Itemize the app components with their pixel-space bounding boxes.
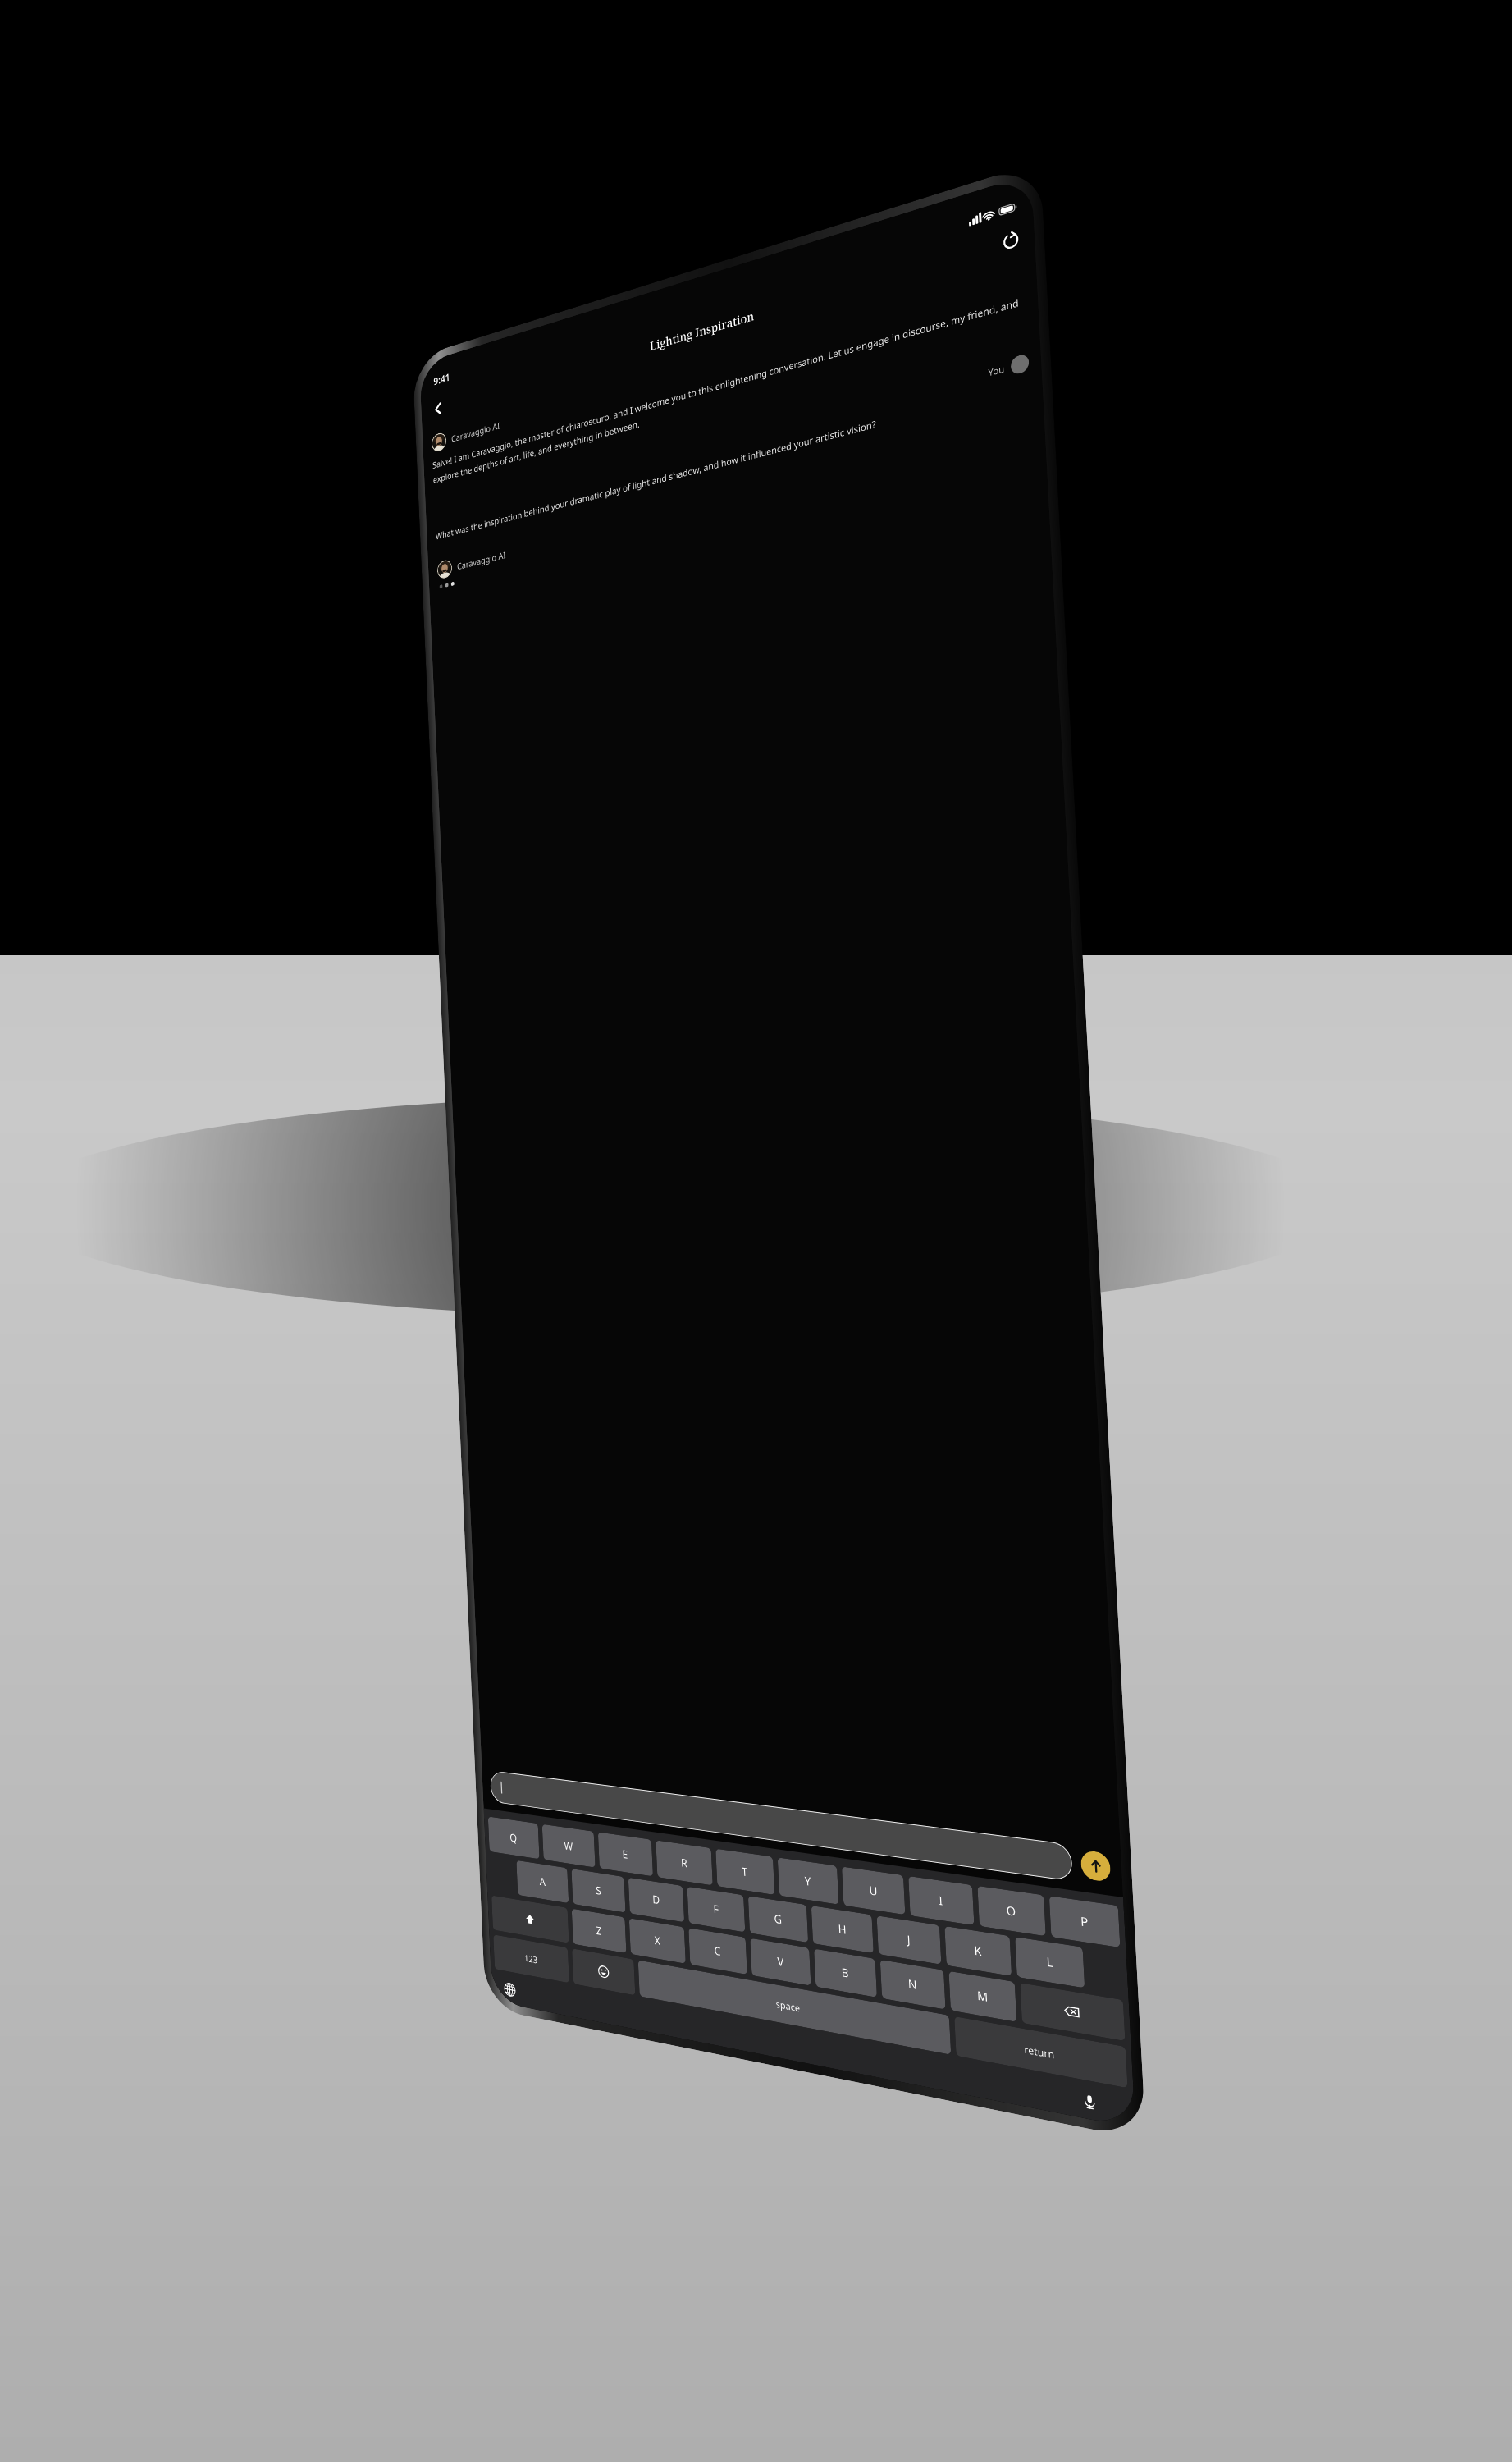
staticText: T bbox=[741, 1864, 748, 1880]
staticText: Y bbox=[804, 1873, 812, 1890]
button[interactable]: space bbox=[638, 1960, 951, 2055]
button[interactable]: X bbox=[629, 1918, 686, 1964]
staticText: F bbox=[713, 1901, 719, 1917]
button[interactable]: return bbox=[954, 2016, 1128, 2088]
staticText: Z bbox=[596, 1923, 602, 1939]
staticText: 123 bbox=[524, 1952, 538, 1966]
button[interactable]: Y bbox=[777, 1857, 839, 1905]
staticText: J bbox=[907, 1931, 911, 1948]
button[interactable]: Send bbox=[1080, 1850, 1111, 1883]
button[interactable]: L bbox=[1015, 1937, 1085, 1988]
button[interactable] bbox=[490, 1770, 1073, 1882]
button[interactable]: Z bbox=[572, 1909, 626, 1953]
button[interactable]: P bbox=[1049, 1896, 1120, 1948]
staticText: A bbox=[539, 1874, 546, 1890]
staticText: D bbox=[652, 1891, 661, 1908]
button[interactable]: Delete bbox=[1020, 1983, 1125, 2041]
staticText: O bbox=[1006, 1902, 1017, 1920]
button[interactable]: Dictate bbox=[1076, 2087, 1103, 2116]
button[interactable]: J bbox=[877, 1916, 941, 1965]
staticText: H bbox=[838, 1921, 847, 1938]
button[interactable]: M bbox=[949, 1971, 1017, 2022]
staticText: You bbox=[988, 362, 1005, 379]
staticText: return bbox=[1024, 2042, 1055, 2061]
staticText: Caravaggio AI bbox=[457, 549, 506, 572]
button[interactable]: S bbox=[571, 1869, 626, 1913]
staticText: X bbox=[654, 1933, 661, 1949]
button[interactable]: Q bbox=[488, 1816, 540, 1859]
staticText: C bbox=[714, 1943, 721, 1960]
staticText: What was the inspiration behind your dra… bbox=[435, 417, 877, 542]
staticText: space bbox=[776, 1997, 800, 2014]
staticText: Q bbox=[509, 1830, 518, 1846]
button[interactable]: G bbox=[748, 1896, 808, 1943]
button[interactable]: U bbox=[842, 1867, 905, 1915]
staticText: I bbox=[938, 1892, 944, 1909]
button[interactable]: History bbox=[995, 220, 1027, 260]
button[interactable]: K bbox=[945, 1926, 1012, 1976]
button[interactable]: A bbox=[516, 1860, 569, 1903]
staticText: N bbox=[908, 1975, 917, 1993]
button[interactable]: Shift bbox=[491, 1895, 569, 1943]
staticText: U bbox=[869, 1882, 878, 1900]
staticText: Salve! I am Caravaggio, the master of ch… bbox=[432, 294, 1027, 486]
staticText: K bbox=[974, 1942, 983, 1960]
button[interactable]: H bbox=[811, 1906, 874, 1953]
button[interactable]: B bbox=[814, 1949, 877, 1997]
staticText: S bbox=[596, 1883, 602, 1899]
button[interactable]: E bbox=[598, 1832, 653, 1876]
staticText: R bbox=[681, 1855, 688, 1871]
button[interactable]: R bbox=[656, 1840, 713, 1885]
staticText: E bbox=[622, 1846, 629, 1862]
staticText: W bbox=[564, 1838, 573, 1854]
button[interactable]: Change language bbox=[500, 1977, 519, 2002]
button[interactable]: T bbox=[716, 1849, 775, 1895]
button[interactable]: O bbox=[977, 1886, 1046, 1936]
button[interactable]: Emoji bbox=[572, 1948, 635, 1995]
button[interactable]: C bbox=[688, 1928, 747, 1975]
button[interactable]: D bbox=[628, 1877, 684, 1922]
staticText: 9:41 bbox=[433, 370, 450, 388]
button[interactable]: W bbox=[542, 1824, 595, 1868]
button[interactable]: Numbers bbox=[493, 1934, 569, 1983]
staticText: G bbox=[774, 1911, 783, 1928]
staticText: P bbox=[1080, 1913, 1089, 1931]
button[interactable]: I bbox=[908, 1876, 974, 1925]
staticText: M bbox=[977, 1987, 989, 2006]
staticText: Caravaggio AI bbox=[451, 419, 500, 445]
staticText: B bbox=[841, 1964, 849, 1982]
button[interactable]: N bbox=[880, 1960, 946, 2009]
button[interactable]: V bbox=[750, 1938, 811, 1986]
button[interactable]: F bbox=[687, 1886, 745, 1932]
staticText: V bbox=[777, 1953, 784, 1970]
button[interactable]: Back bbox=[427, 393, 450, 425]
staticText: L bbox=[1046, 1953, 1054, 1971]
staticText: Lighting Inspiration bbox=[650, 308, 755, 354]
